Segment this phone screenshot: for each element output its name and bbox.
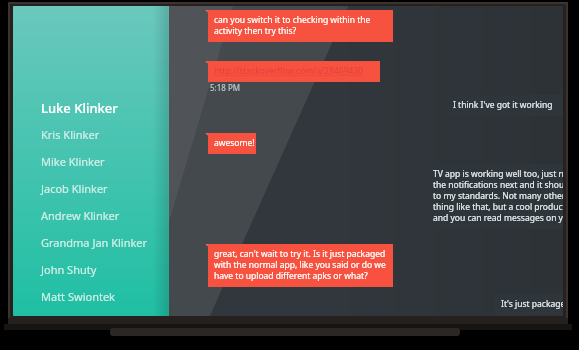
staticText: TV app is working well too, just need to… bbox=[433, 168, 563, 179]
button[interactable]: Luke Klinker bbox=[13, 94, 169, 121]
button[interactable]: Mike Klinker bbox=[13, 148, 169, 175]
staticText: the notifications next and it should be … bbox=[433, 179, 563, 190]
staticText: can you switch it to checking within the bbox=[214, 14, 371, 25]
button[interactable]: can you switch it to checking within the bbox=[205, 10, 398, 42]
staticText: Jacob Klinker bbox=[41, 181, 108, 196]
button[interactable]: Andrew Klinker bbox=[13, 202, 169, 229]
button[interactable]: TV app is working well too, just need to… bbox=[427, 164, 563, 229]
button[interactable]: 5:18 PM bbox=[210, 82, 241, 93]
button[interactable]: Matt Swiontek bbox=[13, 283, 169, 310]
staticText: John Shuty bbox=[41, 262, 97, 277]
staticText: It's just packaged bbox=[501, 298, 563, 309]
staticText: activity then try this? bbox=[214, 25, 297, 36]
staticText: 5:18 PM bbox=[210, 82, 241, 93]
button[interactable]: It's just packaged bbox=[495, 294, 563, 315]
staticText: I think I've got it working bbox=[453, 99, 553, 110]
button[interactable]: John Shuty bbox=[13, 256, 169, 283]
staticText: and you can read messages on your TV bbox=[433, 212, 563, 223]
staticText: http://stackoverflow.com/a/28469430 bbox=[214, 65, 364, 76]
staticText: Matt Swiontek bbox=[41, 289, 115, 304]
button[interactable]: I think I've got it working bbox=[447, 95, 563, 116]
button[interactable]: Jacob Klinker bbox=[13, 175, 169, 202]
staticText: Andrew Klinker bbox=[41, 208, 120, 223]
staticText: Kris Klinker bbox=[41, 127, 100, 142]
staticText: Grandma Jan Klinker bbox=[41, 235, 148, 250]
staticText: great, can't wait to try it. Is it just … bbox=[214, 248, 386, 259]
staticText: awesome! bbox=[214, 137, 255, 148]
button[interactable]: http://stackoverflow.com/a/28469430 bbox=[205, 61, 385, 82]
staticText: with the normal app, like you said or do… bbox=[214, 259, 386, 270]
button[interactable]: Kris Klinker bbox=[13, 121, 169, 148]
button[interactable]: Grandma Jan Klinker bbox=[13, 229, 169, 256]
button[interactable]: great, can't wait to try it. Is it just … bbox=[205, 244, 398, 287]
staticText: Mike Klinker bbox=[41, 154, 105, 169]
button[interactable]: awesome! bbox=[205, 133, 261, 154]
staticText: have to upload different apks or what? bbox=[214, 270, 368, 281]
staticText: thing like that, but a cool product for … bbox=[433, 201, 563, 212]
staticText: Luke Klinker bbox=[41, 99, 118, 117]
staticText: to my standards. Not many others have an… bbox=[433, 190, 563, 201]
